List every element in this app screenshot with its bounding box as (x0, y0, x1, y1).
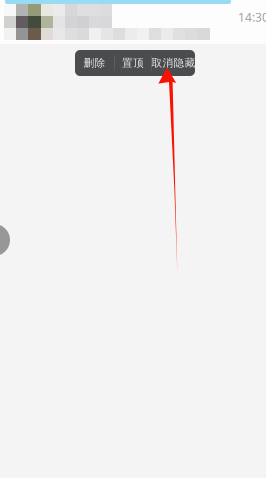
button[interactable]: 取消隐藏 (152, 50, 195, 76)
staticText: 置顶 (122, 56, 144, 69)
button[interactable]: 删除 (75, 50, 114, 76)
staticText: 取消隐藏 (151, 56, 195, 69)
staticText: 14:30 (238, 9, 266, 25)
button[interactable]: 置顶 (115, 50, 151, 76)
staticText: 删除 (83, 56, 105, 69)
